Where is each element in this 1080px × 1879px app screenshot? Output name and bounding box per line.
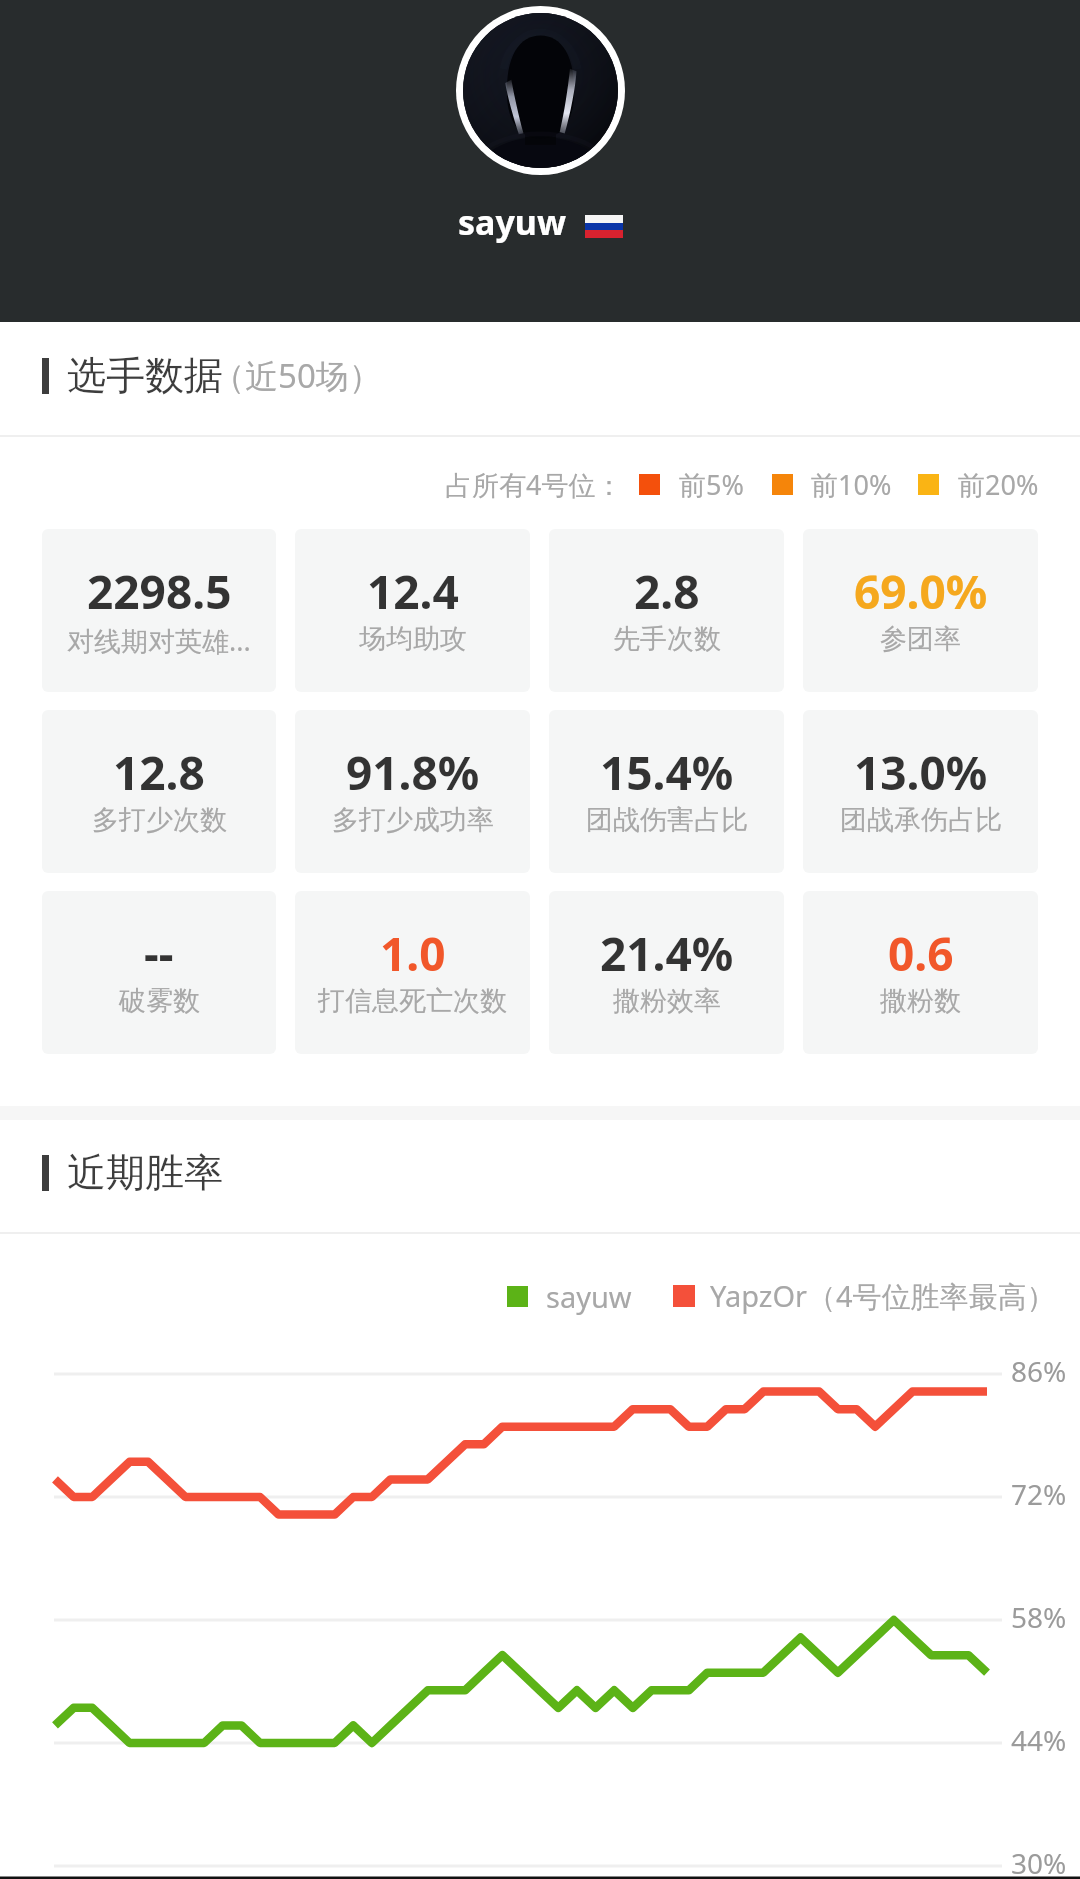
button[interactable]: 15.4%	[549, 710, 784, 873]
staticText: sayuw	[458, 199, 567, 245]
staticText: 前10%	[811, 466, 892, 503]
staticText: 对线期对英雄...	[67, 622, 251, 659]
staticText: 参团率	[880, 622, 961, 656]
staticText: 团战承伤占比	[840, 803, 1002, 837]
staticText: sayuw	[546, 1277, 632, 1316]
staticText: 44%	[1011, 1721, 1067, 1759]
staticText: 近期胜率	[67, 1148, 223, 1197]
button[interactable]: 12.4	[295, 529, 530, 692]
staticText: （近50场）	[212, 353, 382, 398]
staticText: 破雾数	[119, 984, 200, 1018]
staticText: 2298.5	[87, 560, 232, 623]
staticText: 场均助攻	[359, 622, 467, 656]
button[interactable]: 13.0%	[803, 710, 1038, 873]
button[interactable]: Player avatar	[463, 13, 618, 168]
staticText: 撒粉数	[880, 984, 961, 1018]
staticText: 30%	[1011, 1844, 1067, 1879]
staticText: 12.4	[367, 560, 459, 623]
button[interactable]: 21.4%	[549, 891, 784, 1054]
staticText: 多打少次数	[92, 803, 227, 837]
staticText: 72%	[1011, 1475, 1067, 1513]
staticText: 打信息死亡次数	[318, 984, 507, 1018]
staticText: 69.0%	[854, 560, 988, 623]
button[interactable]: 2298.5	[42, 529, 276, 692]
staticText: 选手数据	[67, 351, 223, 400]
button[interactable]: 1.0	[295, 891, 530, 1054]
button[interactable]: 91.8%	[295, 710, 530, 873]
staticText: 前5%	[679, 466, 744, 503]
staticText: 15.4%	[600, 741, 734, 804]
staticText: 前20%	[958, 466, 1039, 503]
staticText: YapzOr（4号位胜率最高）	[710, 1276, 1056, 1316]
staticText: 多打少成功率	[332, 803, 494, 837]
staticText: 1.0	[380, 922, 446, 985]
button[interactable]: 0.6	[803, 891, 1038, 1054]
staticText: 团战伤害占比	[586, 803, 748, 837]
button[interactable]: --	[42, 891, 276, 1054]
staticText: --	[144, 922, 174, 985]
button[interactable]: 69.0%	[803, 529, 1038, 692]
staticText: 2.8	[634, 560, 700, 623]
staticText: 先手次数	[613, 622, 721, 656]
staticText: 86%	[1011, 1352, 1067, 1390]
button[interactable]: 2.8	[549, 529, 784, 692]
staticText: 58%	[1011, 1598, 1067, 1636]
staticText: 撒粉效率	[613, 984, 721, 1018]
staticText: 12.8	[113, 741, 205, 804]
staticText: 0.6	[888, 922, 954, 985]
staticText: 91.8%	[346, 741, 480, 804]
button[interactable]: 12.8	[42, 710, 276, 873]
button[interactable]: sayuw	[0, 199, 1080, 259]
staticText: 21.4%	[600, 922, 734, 985]
staticText: 占所有4号位：	[445, 466, 623, 503]
staticText: 13.0%	[854, 741, 988, 804]
